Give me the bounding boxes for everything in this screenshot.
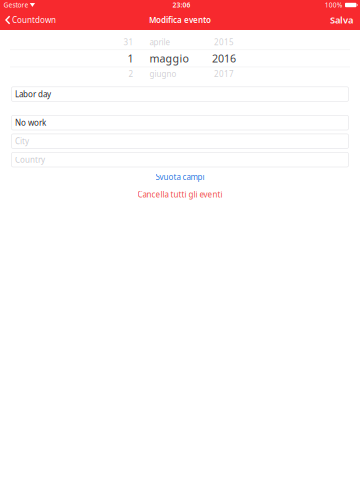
staticText: Countdown bbox=[12, 15, 56, 25]
staticText: maggio bbox=[149, 51, 188, 65]
staticText: No work bbox=[15, 117, 46, 128]
staticText: City bbox=[15, 136, 29, 146]
staticText: Svuota campi bbox=[155, 172, 204, 182]
staticText: Modifica evento bbox=[149, 15, 211, 25]
button[interactable]: Countdown bbox=[0, 10, 60, 30]
staticText: giugno bbox=[149, 68, 176, 79]
staticText: Gestore bbox=[3, 1, 28, 9]
button[interactable]: Salva bbox=[325, 10, 360, 30]
staticText: 2 bbox=[128, 68, 133, 79]
staticText: aprile bbox=[149, 37, 170, 47]
button[interactable]: Cancella tutti gli eventi bbox=[0, 188, 360, 200]
staticText: Country bbox=[15, 154, 45, 165]
staticText: 100% bbox=[325, 1, 343, 9]
staticText: 2015 bbox=[214, 37, 234, 47]
staticText: 1 bbox=[127, 51, 133, 65]
staticText: Labor day bbox=[15, 89, 51, 99]
staticText: Salva bbox=[330, 14, 353, 26]
staticText: 31 bbox=[123, 37, 133, 47]
button[interactable]: Svuota campi bbox=[0, 171, 360, 183]
staticText: 23:06 bbox=[172, 1, 190, 9]
staticText: 2017 bbox=[214, 68, 234, 79]
staticText: 2016 bbox=[212, 51, 236, 65]
staticText: Cancella tutti gli eventi bbox=[137, 189, 222, 200]
